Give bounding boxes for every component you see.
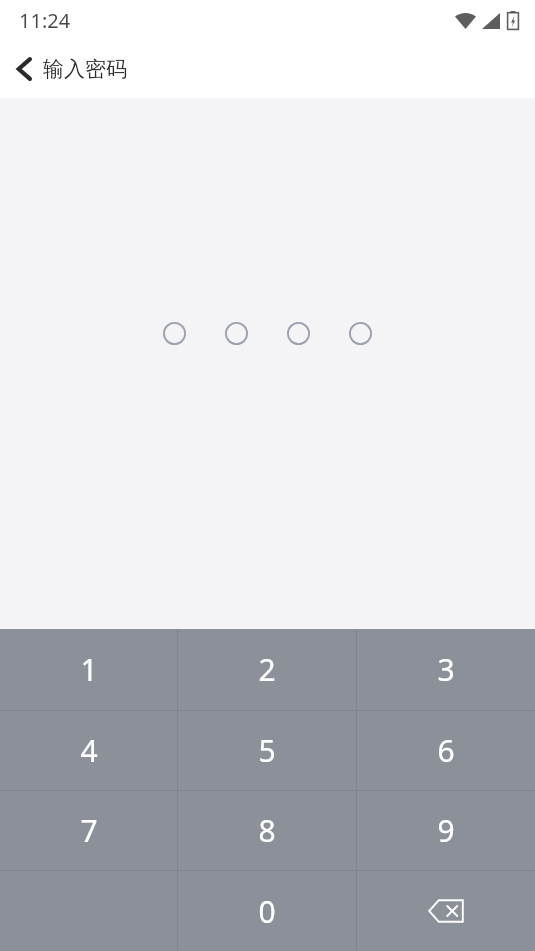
button[interactable]: 8: [178, 791, 356, 870]
button[interactable]: 3: [357, 629, 535, 710]
staticText: 11:24: [19, 7, 71, 34]
staticText: 0: [258, 891, 276, 932]
button[interactable]: 4: [0, 711, 177, 790]
button[interactable]: 9: [357, 791, 535, 870]
button[interactable]: 5: [178, 711, 356, 790]
button[interactable]: 输入密码: [0, 48, 141, 90]
staticText: 6: [437, 730, 455, 771]
button[interactable]: Delete: [357, 871, 535, 951]
button[interactable]: 7: [0, 791, 177, 870]
staticText: 5: [258, 730, 276, 771]
button[interactable]: 0: [178, 871, 356, 951]
button[interactable]: 1: [0, 629, 177, 710]
button[interactable]: 2: [178, 629, 356, 710]
staticText: 1: [80, 649, 98, 690]
button[interactable]: 6: [357, 711, 535, 790]
staticText: 输入密码: [43, 56, 127, 82]
staticText: 2: [258, 649, 276, 690]
staticText: 4: [80, 730, 98, 771]
staticText: 3: [437, 649, 455, 690]
staticText: 9: [437, 810, 455, 851]
staticText: 7: [80, 810, 98, 851]
staticText: 8: [258, 810, 276, 851]
